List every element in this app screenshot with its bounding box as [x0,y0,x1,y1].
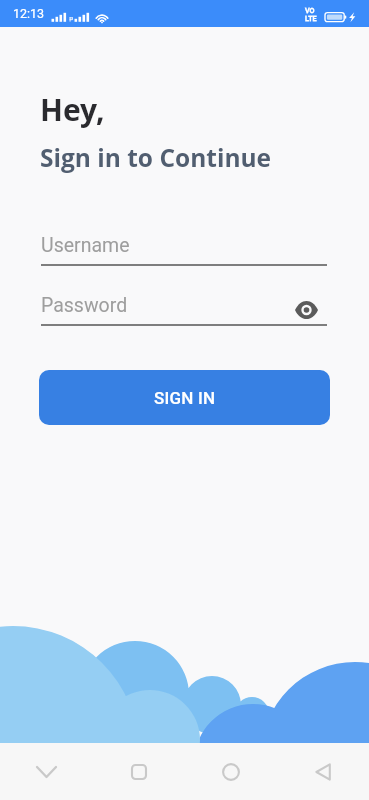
button[interactable]: Password [41,294,327,326]
staticText: Hey, [40,89,105,130]
button[interactable]: Home [185,743,277,800]
button[interactable]: SIGN IN [39,370,330,425]
staticText: LTE [305,14,317,22]
staticText: Username [41,234,327,256]
button[interactable]: Recent apps [93,743,185,800]
staticText: SIGN IN [154,388,216,408]
button[interactable]: Hide keyboard [0,743,93,800]
staticText: Sign in to Continue [40,141,272,174]
button[interactable]: Username [41,234,327,266]
button[interactable]: Back [277,743,369,800]
staticText: Password [41,294,295,316]
button[interactable]: Show password [295,294,327,316]
staticText: VO [305,6,315,14]
staticText: 12:13 [13,6,45,21]
